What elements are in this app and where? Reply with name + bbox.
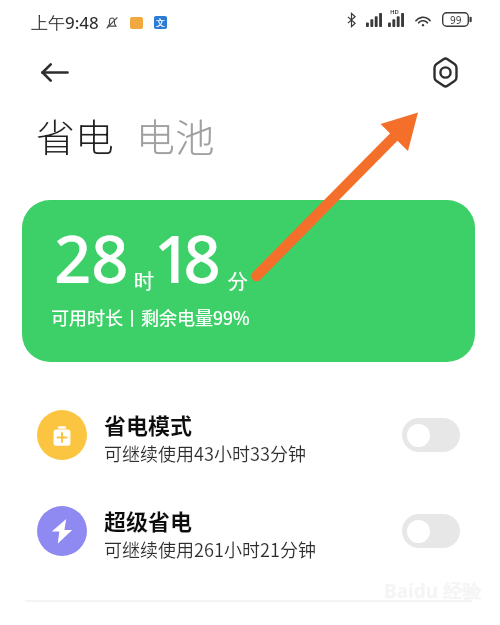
staticText: Baidu 经验 xyxy=(384,578,481,604)
staticText: 可用时长丨剩余电量99% xyxy=(51,304,250,330)
button[interactable]: 电池 xyxy=(136,107,215,163)
staticText: 28 xyxy=(54,214,129,303)
staticText: 文 xyxy=(156,17,165,28)
button[interactable]: 省电 xyxy=(36,107,115,163)
button[interactable]: 超级省电 xyxy=(0,484,500,578)
staticText: 99 xyxy=(450,13,462,27)
staticText: 时 xyxy=(134,269,154,294)
staticText: HD xyxy=(390,8,399,16)
staticText: 18 xyxy=(154,214,213,303)
button[interactable]: Settings xyxy=(421,48,469,96)
staticText: 超级省电 xyxy=(104,504,193,536)
button[interactable]: Toggle 超级省电 xyxy=(402,514,460,548)
button[interactable]: Toggle 省电模式 xyxy=(402,418,460,452)
button[interactable]: 28 xyxy=(22,200,475,362)
staticText: 省电 xyxy=(36,107,115,163)
button[interactable]: 省电模式 xyxy=(0,388,500,482)
staticText: 省电模式 xyxy=(104,408,193,440)
staticText: 可继续使用43小时33分钟 xyxy=(104,440,306,466)
button[interactable]: Back xyxy=(30,48,78,96)
staticText: 上午9:48 xyxy=(31,11,99,34)
staticText: 分 xyxy=(228,269,248,294)
staticText: 电池 xyxy=(136,107,215,163)
staticText: 可继续使用261小时21分钟 xyxy=(104,536,316,562)
